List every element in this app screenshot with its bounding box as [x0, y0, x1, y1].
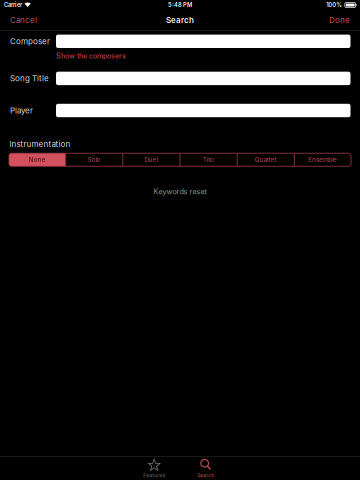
- staticText: 5:48 PM: [168, 1, 192, 8]
- button[interactable]: Duet: [123, 153, 180, 166]
- staticText: Search: [166, 15, 194, 25]
- button[interactable]: [56, 35, 350, 48]
- staticText: Ensemble: [308, 156, 337, 163]
- staticText: Duet: [144, 156, 158, 163]
- staticText: Show the composers: [56, 52, 126, 60]
- button[interactable]: Solo: [66, 153, 122, 166]
- button[interactable]: Quartet: [237, 153, 294, 166]
- staticText: 100%: [326, 1, 342, 8]
- staticText: Cancel: [10, 15, 37, 25]
- staticText: Instrumentation: [9, 139, 70, 149]
- button[interactable]: Search: [180, 457, 232, 480]
- button[interactable]: [56, 104, 350, 117]
- button[interactable]: [56, 72, 350, 85]
- button[interactable]: Done: [325, 12, 354, 28]
- button[interactable]: Ensemble: [295, 153, 351, 166]
- button[interactable]: Featured: [128, 457, 180, 480]
- button[interactable]: None: [9, 153, 65, 166]
- staticText: Quartet: [255, 156, 277, 163]
- staticText: Featured: [143, 472, 165, 478]
- staticText: Solo: [88, 156, 101, 163]
- staticText: Trio: [203, 156, 214, 163]
- button[interactable]: Cancel: [6, 12, 41, 28]
- staticText: Keywords reset: [153, 187, 206, 196]
- staticText: Player: [10, 106, 33, 115]
- staticText: Done: [329, 15, 350, 25]
- button[interactable]: Show the composers: [56, 53, 126, 59]
- staticText: Carrier: [4, 1, 22, 8]
- staticText: Search: [197, 472, 214, 478]
- staticText: Song Title: [10, 74, 49, 83]
- button[interactable]: Trio: [180, 153, 237, 166]
- staticText: None: [29, 156, 46, 163]
- staticText: Composer: [10, 36, 50, 46]
